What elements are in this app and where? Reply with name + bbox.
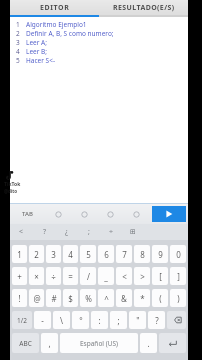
- staticText: (: [159, 293, 162, 304]
- staticText: >: [140, 271, 145, 282]
- button[interactable]: ;: [78, 224, 100, 240]
- button[interactable]: 8: [134, 245, 150, 263]
- button[interactable]: -: [34, 311, 51, 329]
- button[interactable]: ABC: [12, 333, 39, 353]
- button[interactable]: 9: [152, 245, 168, 263]
- button[interactable]: 7: [116, 245, 132, 263]
- staticText: 5: [86, 249, 91, 260]
- staticText: [: [159, 271, 162, 282]
- button[interactable]: ?: [148, 311, 165, 329]
- button[interactable]: TAB: [10, 204, 45, 224]
- button[interactable]: _: [98, 267, 114, 285]
- staticText: @: [33, 293, 41, 304]
- staticText: -: [41, 315, 44, 326]
- staticText: ;: [88, 227, 90, 237]
- staticText: *: [140, 293, 145, 304]
- button[interactable]: @: [29, 289, 44, 307]
- staticText: 2: [16, 29, 20, 38]
- button[interactable]: Tool 3: [97, 204, 123, 224]
- staticText: .: [147, 338, 150, 349]
- button[interactable]: <: [116, 267, 132, 285]
- staticText: ×: [34, 271, 39, 282]
- button[interactable]: !: [12, 289, 27, 307]
- button[interactable]: Tool 1: [45, 204, 71, 224]
- button[interactable]: *: [134, 289, 150, 307]
- button[interactable]: ⊞: [122, 224, 144, 240]
- button[interactable]: <: [10, 224, 33, 240]
- button[interactable]: ×: [29, 267, 44, 285]
- button[interactable]: ]: [170, 267, 186, 285]
- staticText: ^: [104, 293, 109, 304]
- staticText: Español (US): [80, 339, 118, 348]
- button[interactable]: Intro: [159, 333, 186, 353]
- staticText: \: [60, 315, 63, 326]
- button[interactable]: ¿: [56, 224, 78, 240]
- staticText: ?: [43, 227, 47, 237]
- staticText: &: [121, 293, 127, 304]
- staticText: 1: [16, 20, 20, 29]
- button[interactable]: 6: [98, 245, 114, 263]
- button[interactable]: ;: [110, 311, 127, 329]
- staticText: Leer B;: [26, 47, 48, 56]
- button[interactable]: 1/2: [12, 311, 32, 329]
- staticText: 4: [68, 249, 73, 260]
- staticText: ;: [117, 315, 120, 326]
- staticText: @dito: [4, 188, 17, 194]
- staticText: 6: [104, 249, 109, 260]
- button[interactable]: ÷: [46, 267, 61, 285]
- button[interactable]: 1: [10, 17, 188, 204]
- button[interactable]: EDITOR: [10, 0, 99, 15]
- button[interactable]: Ejecutar: [152, 206, 186, 222]
- staticText: 1/2: [17, 316, 27, 325]
- button[interactable]: 2: [29, 245, 44, 263]
- button[interactable]: /: [80, 267, 96, 285]
- button[interactable]: (: [152, 289, 168, 307]
- staticText: 5: [16, 56, 20, 65]
- button[interactable]: #: [46, 289, 61, 307]
- staticText: 8: [140, 249, 145, 260]
- button[interactable]: ": [129, 311, 146, 329]
- button[interactable]: $: [63, 289, 78, 307]
- button[interactable]: RESULTADO(E/S): [99, 0, 188, 15]
- staticText: 0: [176, 249, 181, 260]
- button[interactable]: Español (US): [60, 333, 138, 353]
- button[interactable]: Borrar: [167, 311, 186, 329]
- button[interactable]: +: [12, 267, 27, 285]
- button[interactable]: 1: [12, 245, 27, 263]
- button[interactable]: ?: [33, 224, 56, 240]
- staticText: 3: [16, 38, 20, 47]
- button[interactable]: °: [72, 311, 89, 329]
- button[interactable]: %: [80, 289, 96, 307]
- staticText: Hacer S<-: [26, 56, 56, 65]
- staticText: ]: [177, 271, 180, 282]
- button[interactable]: ^: [98, 289, 114, 307]
- staticText: <: [19, 227, 24, 237]
- staticText: EDITOR: [40, 3, 70, 13]
- button[interactable]: \: [53, 311, 70, 329]
- button[interactable]: &: [116, 289, 132, 307]
- staticText: TikTok: [4, 181, 21, 188]
- staticText: 9: [158, 249, 163, 260]
- staticText: TAB: [22, 210, 33, 218]
- staticText: 1: [17, 249, 22, 260]
- button[interactable]: Tool 2: [71, 204, 97, 224]
- staticText: ÷: [109, 227, 114, 237]
- staticText: /: [87, 271, 90, 282]
- button[interactable]: :: [91, 311, 108, 329]
- button[interactable]: 3: [46, 245, 61, 263]
- button[interactable]: >: [134, 267, 150, 285]
- button[interactable]: 5: [80, 245, 96, 263]
- button[interactable]: 0: [170, 245, 186, 263]
- button[interactable]: 4: [63, 245, 78, 263]
- button[interactable]: Tool 4: [123, 204, 149, 224]
- button[interactable]: .: [140, 333, 157, 353]
- button[interactable]: ,: [41, 333, 58, 353]
- button[interactable]: ): [170, 289, 186, 307]
- staticText: ÷: [51, 271, 56, 282]
- button[interactable]: =: [63, 267, 78, 285]
- button[interactable]: ÷: [100, 224, 122, 240]
- staticText: +: [17, 271, 22, 282]
- button[interactable]: [: [152, 267, 168, 285]
